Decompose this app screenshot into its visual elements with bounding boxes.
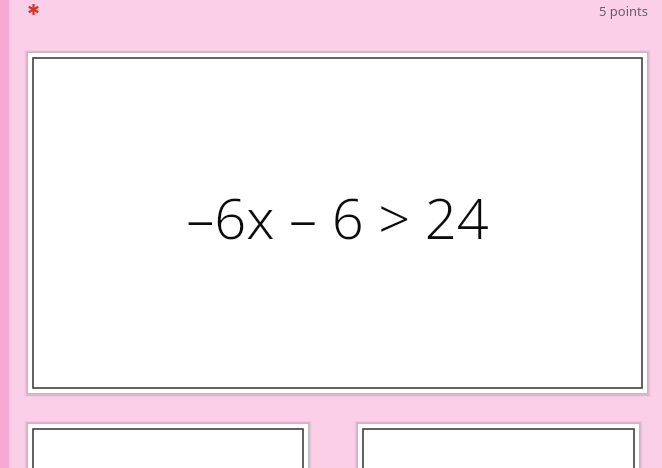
other: Required question [27,3,40,16]
staticText: 5 points [599,2,648,20]
button[interactable]: 5 points [599,2,648,20]
button[interactable]: Question image: negative six x minus six… [27,52,648,394]
button[interactable]: Answer option one image [27,423,309,468]
button[interactable]: Answer option two image [357,423,640,468]
staticText: –6x – 6 > 24 [186,179,489,255]
